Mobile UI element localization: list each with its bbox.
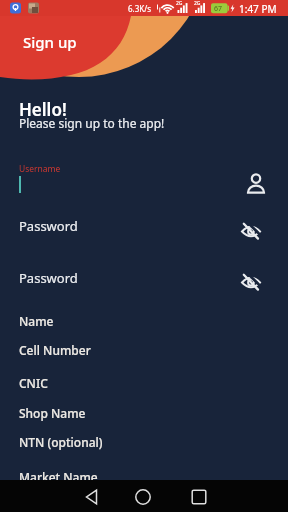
button[interactable] xyxy=(190,487,208,505)
button[interactable] xyxy=(241,222,261,242)
button[interactable]: Market Name xyxy=(0,464,288,494)
staticText: Name xyxy=(19,313,54,329)
staticText: 6.3K/s xyxy=(128,3,152,14)
staticText: Hello! xyxy=(19,98,67,121)
button[interactable]: Password xyxy=(0,208,288,248)
button[interactable] xyxy=(134,487,152,505)
staticText: Password xyxy=(19,217,78,235)
staticText: 1:47 PM xyxy=(239,2,277,16)
button[interactable]: NTN (optional) xyxy=(0,429,288,459)
staticText: Market Name xyxy=(19,469,98,485)
button[interactable]: Password xyxy=(0,260,288,300)
staticText: Cell Number xyxy=(19,342,91,358)
staticText: NTN (optional) xyxy=(19,434,103,450)
staticText: 67 xyxy=(214,4,223,14)
button[interactable]: CNIC xyxy=(0,370,288,400)
button[interactable] xyxy=(241,273,261,293)
staticText: Shop Name xyxy=(19,405,86,421)
staticText: CNIC xyxy=(19,375,48,391)
staticText: Username xyxy=(19,163,61,175)
button[interactable] xyxy=(80,487,98,505)
button[interactable]: Cell Number xyxy=(0,337,288,367)
staticText: Please sign up to the app! xyxy=(19,115,165,131)
staticText: Password xyxy=(19,269,78,287)
staticText: 2G xyxy=(194,0,201,7)
button[interactable] xyxy=(244,170,268,196)
staticText: 2G xyxy=(176,0,183,7)
button[interactable]: Shop Name xyxy=(0,400,288,430)
button[interactable]: Name xyxy=(0,308,288,338)
staticText: Sign up xyxy=(23,32,77,52)
button[interactable]: Username xyxy=(0,158,288,198)
